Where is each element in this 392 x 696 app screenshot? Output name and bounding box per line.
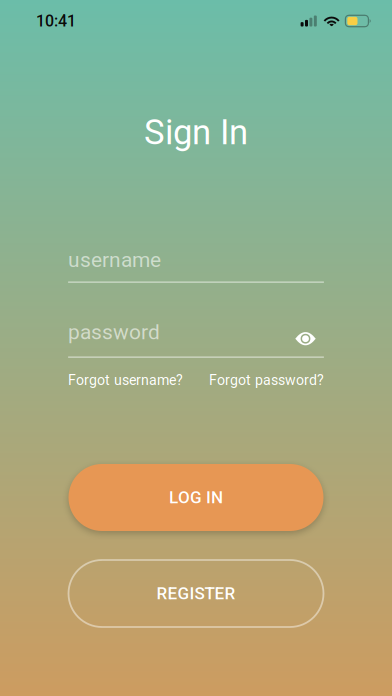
button[interactable]: Show password bbox=[294, 317, 324, 347]
button[interactable]: LOG IN bbox=[68, 464, 323, 531]
staticText: Forgot username? bbox=[68, 372, 183, 389]
staticText: 10:41 bbox=[36, 12, 76, 30]
button[interactable]: Forgot password? bbox=[209, 372, 324, 389]
staticText: REGISTER bbox=[156, 583, 235, 603]
staticText: Forgot password? bbox=[209, 372, 324, 389]
staticText: LOG IN bbox=[169, 487, 223, 507]
staticText: Sign In bbox=[144, 112, 248, 153]
staticText: password bbox=[68, 320, 160, 344]
button[interactable]: Forgot username? bbox=[68, 372, 183, 389]
staticText: username bbox=[68, 247, 161, 272]
button[interactable]: REGISTER bbox=[68, 560, 323, 627]
